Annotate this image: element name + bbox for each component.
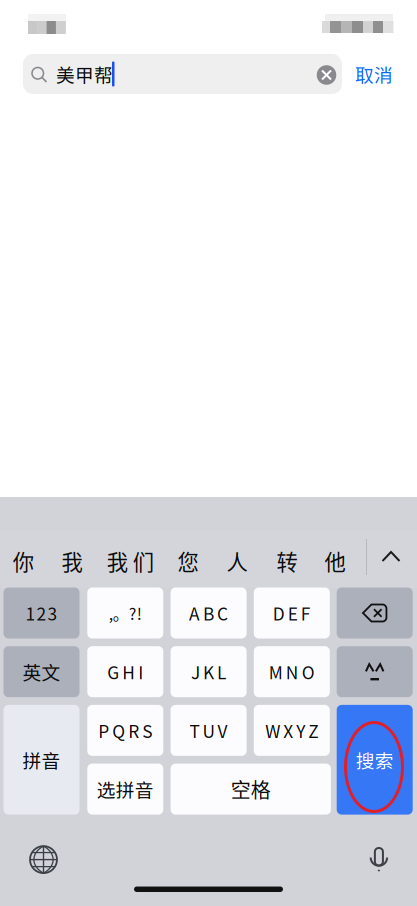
button[interactable]: PQRS xyxy=(87,705,163,756)
button[interactable]: Dictate xyxy=(357,837,401,881)
staticText: 他 xyxy=(324,546,345,576)
staticText: 我们 xyxy=(107,546,154,576)
button[interactable]: 我们 xyxy=(107,539,154,583)
button[interactable]: WXYZ xyxy=(254,705,330,756)
button[interactable]: ABC xyxy=(171,587,247,638)
button[interactable]: JKL xyxy=(171,646,247,697)
staticText: 英文 xyxy=(22,658,60,685)
button[interactable]: TUV xyxy=(171,705,247,756)
staticText: GHI xyxy=(107,659,143,684)
button[interactable]: More candidates xyxy=(369,534,413,578)
button[interactable]: GHI xyxy=(87,646,163,697)
button[interactable]: 取消 xyxy=(348,54,400,94)
button[interactable]: Switch keyboard xyxy=(21,838,65,882)
staticText: 123 xyxy=(25,600,57,626)
staticText: JKL xyxy=(191,659,226,684)
staticText: 拼音 xyxy=(22,746,60,773)
staticText: TUV xyxy=(190,718,228,743)
staticText: 搜索 xyxy=(356,746,394,773)
staticText: ABC xyxy=(189,600,228,626)
button[interactable]: Delete xyxy=(337,587,413,638)
button[interactable]: 搜索 xyxy=(337,705,413,815)
staticText: 美甲帮 xyxy=(56,60,113,87)
button[interactable]: 英文 xyxy=(3,646,79,697)
button[interactable]: MNO xyxy=(254,646,330,697)
staticText: 我 xyxy=(61,546,82,576)
staticText: 您 xyxy=(177,546,198,576)
button[interactable]: 转 xyxy=(276,539,297,583)
button[interactable]: 人 xyxy=(226,539,247,583)
button[interactable]: ,。?! xyxy=(87,587,163,638)
button[interactable]: 选拼音 xyxy=(87,764,163,815)
staticText: MNO xyxy=(269,659,315,684)
button[interactable]: Clear text xyxy=(309,55,343,95)
button[interactable]: 他 xyxy=(324,539,345,583)
button[interactable]: 你 xyxy=(13,539,34,583)
button[interactable]: 我 xyxy=(61,539,82,583)
button[interactable]: 您 xyxy=(177,539,198,583)
staticText: 空格 xyxy=(231,775,271,804)
staticText: 人 xyxy=(226,546,247,576)
button[interactable]: 空格 xyxy=(171,764,331,815)
staticText: 选拼音 xyxy=(97,776,154,803)
staticText: 转 xyxy=(276,546,297,576)
staticText: PQRS xyxy=(98,718,152,743)
button[interactable]: 123 xyxy=(3,587,79,638)
staticText: 取消 xyxy=(355,60,393,87)
button[interactable]: DEF xyxy=(254,587,330,638)
staticText: DEF xyxy=(273,600,311,626)
staticText: WXYZ xyxy=(265,718,318,743)
button[interactable]: 拼音 xyxy=(3,705,79,815)
staticText: ,。?! xyxy=(109,601,142,625)
button[interactable]: Emoji xyxy=(337,646,413,697)
staticText: 你 xyxy=(13,546,34,576)
